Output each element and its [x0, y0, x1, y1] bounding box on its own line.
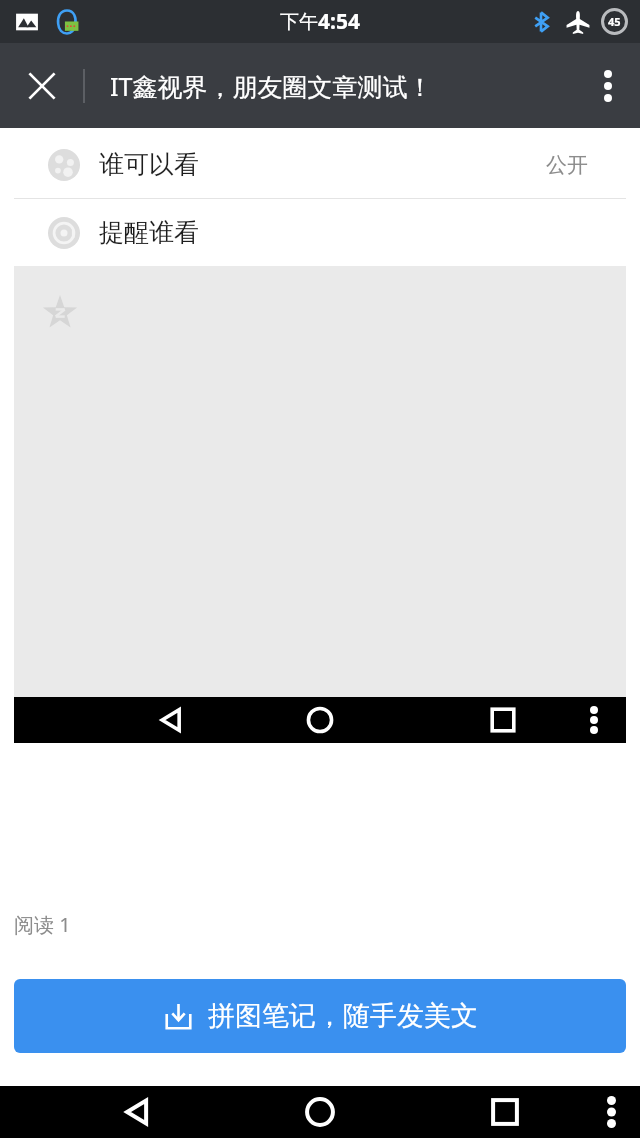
button[interactable]: 谁可以看 — [0, 131, 640, 198]
staticText: 公开 — [546, 152, 588, 178]
button[interactable]: More — [607, 1096, 616, 1128]
button[interactable]: 拼图笔记，随手发美文 — [14, 979, 626, 1053]
button[interactable]: Close — [0, 43, 84, 128]
button[interactable]: 提醒谁看 — [0, 199, 640, 266]
staticText: 45 — [608, 14, 621, 29]
button[interactable]: More options — [576, 43, 640, 128]
button[interactable]: Back — [154, 703, 188, 737]
staticText: 4:54 — [318, 7, 360, 36]
button[interactable]: Home — [303, 703, 337, 737]
staticText: 拼图笔记，随手发美文 — [208, 999, 478, 1033]
staticText: 谁可以看 — [99, 149, 199, 180]
button[interactable]: Back — [118, 1093, 156, 1131]
staticText: 下午 — [280, 10, 318, 34]
staticText: 阅读 1 — [14, 911, 71, 938]
staticText: IT鑫视界，朋友圈文章测试！ — [110, 69, 433, 103]
button[interactable]: Home — [301, 1093, 339, 1131]
staticText: 提醒谁看 — [99, 217, 199, 248]
button[interactable]: Recents — [488, 705, 518, 735]
button[interactable]: More — [590, 706, 598, 734]
button[interactable]: Recents — [488, 1095, 522, 1129]
